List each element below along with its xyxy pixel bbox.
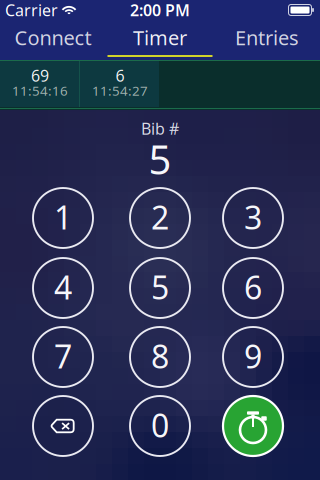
staticText: 6: [115, 65, 124, 86]
button[interactable]: 69: [0, 61, 79, 107]
button[interactable]: 6: [223, 258, 283, 318]
button[interactable]: Start timer: [223, 396, 283, 456]
staticText: 11:54:16: [12, 82, 68, 99]
staticText: 6: [244, 266, 262, 308]
staticText: Carrier: [5, 0, 58, 21]
staticText: 5: [151, 266, 169, 308]
button[interactable]: 1: [33, 188, 93, 248]
button[interactable]: Delete: [33, 396, 93, 456]
staticText: 69: [31, 65, 49, 86]
staticText: 1: [54, 196, 72, 238]
button[interactable]: 4: [33, 258, 93, 318]
staticText: 0: [151, 404, 169, 446]
button[interactable]: 6: [80, 61, 159, 107]
staticText: Timer: [133, 24, 187, 51]
button[interactable]: 8: [130, 327, 190, 387]
button[interactable]: 5: [130, 258, 190, 318]
button[interactable]: Timer: [107, 20, 213, 60]
button[interactable]: Entries: [214, 20, 320, 60]
staticText: 2: [151, 196, 169, 238]
staticText: 7: [54, 335, 72, 377]
staticText: 2:00 PM: [130, 0, 190, 21]
staticText: Connect: [14, 24, 91, 51]
staticText: 8: [151, 335, 169, 377]
staticText: 3: [244, 196, 262, 238]
button[interactable]: 9: [223, 327, 283, 387]
button[interactable]: 3: [223, 188, 283, 248]
staticText: 4: [54, 266, 72, 308]
staticText: Bib #: [141, 118, 179, 139]
staticText: 11:54:27: [92, 82, 148, 99]
staticText: 9: [244, 335, 262, 377]
button[interactable]: Connect: [0, 20, 106, 60]
button[interactable]: 0: [130, 396, 190, 456]
button[interactable]: 2: [130, 188, 190, 248]
staticText: Entries: [235, 24, 299, 51]
staticText: 5: [148, 132, 171, 185]
button[interactable]: 7: [33, 327, 93, 387]
